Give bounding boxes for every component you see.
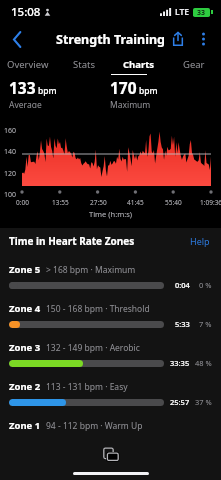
staticText: 37 %	[195, 397, 212, 407]
staticText: Zone 2	[9, 380, 41, 393]
staticText: 0 %	[199, 280, 212, 290]
staticText: 160	[4, 126, 17, 136]
staticText: 33:35	[170, 358, 190, 368]
staticText: 55:40	[165, 198, 182, 207]
staticText: Zone 4	[9, 302, 41, 315]
button[interactable]: Help	[188, 231, 212, 251]
button[interactable]: Share	[165, 26, 191, 52]
staticText: 27:50	[90, 198, 107, 207]
staticText: 113 - 131 bpm · Easy	[46, 381, 128, 393]
button[interactable]: Zone 1	[0, 419, 221, 458]
staticText: Help	[190, 235, 210, 247]
staticText: Average	[9, 99, 42, 108]
staticText: 100	[4, 190, 17, 200]
staticText: bpm	[139, 85, 158, 97]
staticText: 25:57	[170, 397, 190, 407]
staticText: 132 - 149 bpm · Aerobic	[46, 342, 140, 354]
staticText: 7 %	[199, 319, 212, 329]
button[interactable]: More options	[191, 27, 215, 51]
staticText: bpm	[38, 85, 57, 97]
staticText: Zone 1	[9, 419, 41, 432]
button[interactable]: Charts	[111, 54, 166, 74]
button[interactable]: Back	[0, 24, 34, 54]
staticText: Strength Training	[56, 31, 165, 48]
staticText: > 168 bpm · Maximum	[46, 264, 136, 276]
button[interactable]: Zone 5	[0, 263, 221, 302]
staticText: Stats	[73, 58, 95, 71]
staticText: 170	[110, 77, 137, 98]
staticText: Time in Heart Rate Zones	[9, 234, 135, 248]
button[interactable]: Zone 2	[0, 380, 221, 419]
button[interactable]: Overview	[0, 54, 56, 74]
button[interactable]: Compare activities	[96, 440, 126, 470]
button[interactable]: Gear	[166, 54, 221, 74]
staticText: LTE	[175, 6, 190, 18]
staticText: 13:55	[52, 198, 69, 207]
staticText: Overview	[7, 58, 49, 71]
staticText: 15:08	[11, 4, 41, 20]
staticText: 120	[4, 169, 17, 179]
staticText: 133	[9, 77, 36, 98]
staticText: 94 - 112 bpm · Warm Up	[46, 420, 143, 432]
button[interactable]: Zone 4	[0, 302, 221, 341]
button[interactable]: Zone 3	[0, 341, 221, 380]
staticText: 48 %	[195, 358, 212, 368]
staticText: Time (h:m:s)	[89, 209, 133, 219]
staticText: Charts	[123, 58, 155, 71]
staticText: Zone 5	[9, 263, 41, 276]
staticText: 0:00	[16, 198, 29, 207]
staticText: Zone 3	[9, 341, 41, 354]
button[interactable]: Stats	[56, 54, 111, 74]
staticText: 140	[4, 147, 17, 157]
staticText: 1:09:36	[200, 198, 221, 207]
staticText: Maximum	[110, 99, 151, 108]
staticText: Gear	[183, 58, 205, 71]
staticText: 150 - 168 bpm · Threshold	[46, 303, 150, 315]
staticText: 5:33	[175, 319, 190, 329]
staticText: 0:04	[175, 280, 190, 290]
staticText: 33	[197, 8, 206, 17]
staticText: 41:45	[127, 198, 144, 207]
